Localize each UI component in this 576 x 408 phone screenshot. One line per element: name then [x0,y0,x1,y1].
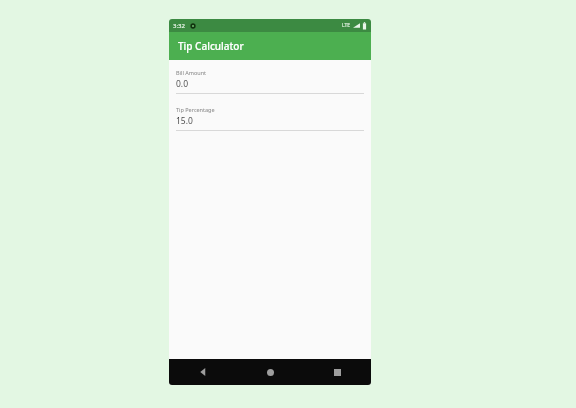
staticText: LTE [342,22,351,29]
staticText: 0.0 [176,78,189,90]
button[interactable]: Recent apps [314,359,360,385]
button[interactable]: Back [180,359,226,385]
button[interactable]: Tip Calculator [169,32,371,60]
staticText: 15.0 [176,115,193,127]
staticText: Tip Calculator [178,39,244,53]
staticText: Bill Amount [176,69,207,76]
staticText: 3:32 [173,22,185,30]
button[interactable]: Home [247,359,293,385]
staticText: Tip Percentage [176,106,215,113]
button[interactable]: Tip Percentage [176,106,364,131]
button[interactable]: Bill Amount [176,69,364,94]
